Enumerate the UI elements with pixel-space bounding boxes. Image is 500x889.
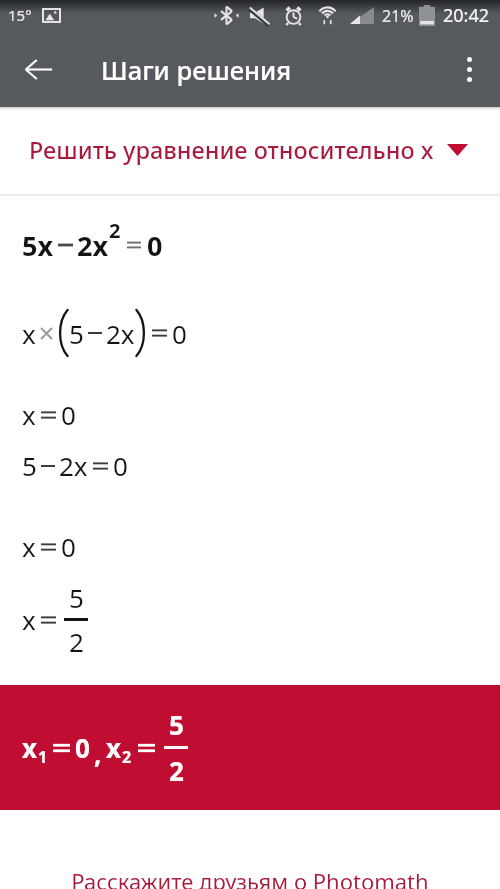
staticText: 2 bbox=[122, 746, 132, 768]
staticText: , bbox=[94, 736, 102, 771]
staticText: 2x bbox=[106, 316, 135, 351]
staticText: 20:42 bbox=[443, 3, 490, 28]
staticText: Решить уравнение относительно x bbox=[29, 134, 434, 166]
staticText: 5 bbox=[169, 707, 184, 742]
staticText: 2x bbox=[59, 448, 88, 483]
staticText: 0 bbox=[113, 448, 128, 483]
staticText: 5 bbox=[22, 448, 37, 483]
staticText: 1 bbox=[38, 746, 48, 768]
button[interactable]: x bbox=[0, 685, 500, 810]
staticText: 0 bbox=[61, 529, 76, 564]
button[interactable]: Back bbox=[10, 41, 66, 97]
button[interactable]: x bbox=[0, 298, 500, 368]
staticText: 0 bbox=[75, 730, 90, 765]
button[interactable]: x bbox=[0, 511, 500, 581]
staticText: x bbox=[22, 730, 38, 765]
staticText: 5 bbox=[69, 580, 84, 615]
staticText: 2 bbox=[169, 753, 184, 788]
button[interactable]: More options bbox=[441, 41, 497, 97]
button[interactable]: 5x bbox=[0, 200, 500, 290]
staticText: 0 bbox=[61, 397, 76, 432]
button[interactable]: Расскажите друзьям о Photomath bbox=[0, 866, 500, 889]
button[interactable]: x bbox=[0, 379, 500, 449]
staticText: 2 bbox=[69, 624, 84, 659]
staticText: 0 bbox=[172, 316, 187, 351]
staticText: x bbox=[22, 529, 36, 564]
button[interactable]: 5 bbox=[0, 430, 500, 500]
staticText: 15° bbox=[8, 5, 32, 25]
staticText: 5 bbox=[69, 316, 84, 351]
staticText: 2 bbox=[109, 217, 121, 244]
staticText: x bbox=[22, 397, 36, 432]
staticText: 21% bbox=[382, 5, 414, 27]
staticText: Шаги решения bbox=[101, 53, 292, 88]
staticText: 5x bbox=[22, 227, 54, 264]
staticText: 2x bbox=[77, 227, 109, 264]
staticText: 0 bbox=[147, 227, 163, 264]
button[interactable]: x bbox=[0, 574, 500, 664]
staticText: x bbox=[106, 730, 122, 765]
button[interactable]: Решить уравнение относительно x bbox=[0, 110, 500, 194]
staticText: x bbox=[22, 602, 36, 637]
staticText: x bbox=[22, 316, 36, 351]
